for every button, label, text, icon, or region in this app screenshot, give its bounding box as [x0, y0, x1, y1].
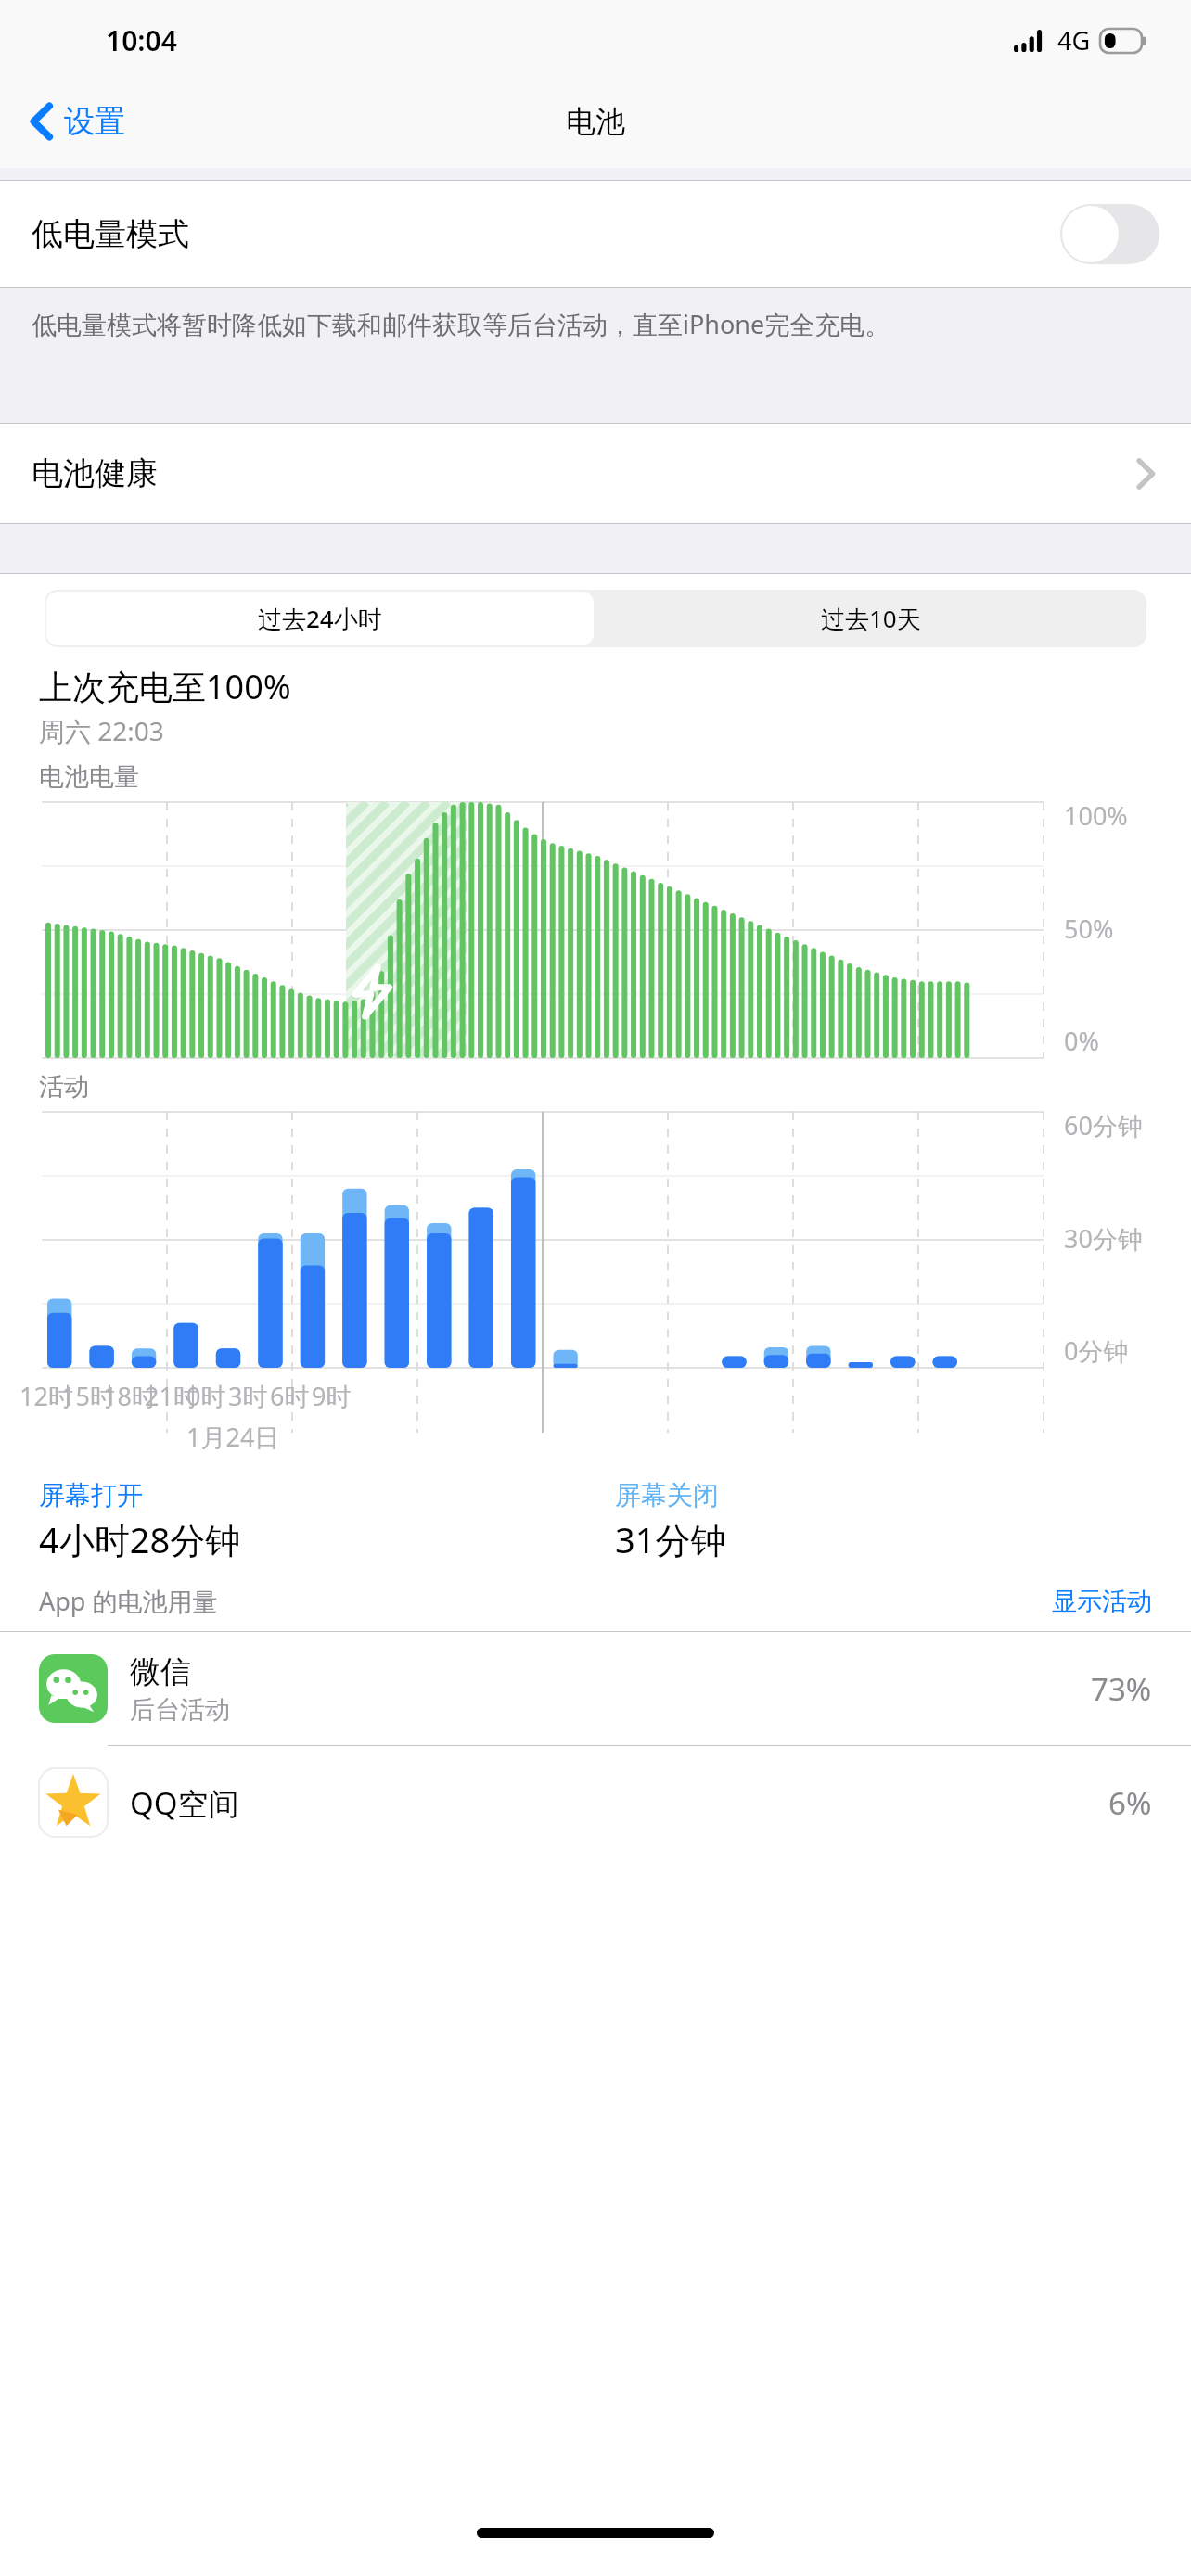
- staticText: 50%: [1064, 912, 1114, 946]
- staticText: 6时: [270, 1379, 310, 1413]
- staticText: 低电量模式: [32, 214, 189, 254]
- button[interactable]: 低电量模式: [0, 181, 1191, 287]
- staticText: 电池: [566, 103, 625, 140]
- staticText: 4G: [1057, 23, 1091, 57]
- staticText: 21时: [145, 1379, 198, 1413]
- button[interactable]: 过去10天: [595, 590, 1146, 647]
- staticText: 0分钟: [1064, 1333, 1129, 1368]
- staticText: 30分钟: [1064, 1221, 1143, 1256]
- staticText: 15时: [61, 1379, 115, 1413]
- staticText: 电池电量: [39, 761, 139, 793]
- staticText: 屏幕关闭: [615, 1479, 719, 1511]
- staticText: 周六 22:03: [39, 713, 164, 748]
- staticText: 9时: [312, 1379, 352, 1413]
- staticText: 3时: [228, 1379, 268, 1413]
- staticText: 微信: [130, 1652, 191, 1691]
- staticText: 6%: [1108, 1782, 1152, 1824]
- staticText: App 的电池用量: [39, 1584, 218, 1618]
- button[interactable]: QQ空间: [0, 1746, 1191, 1859]
- staticText: 设置: [64, 102, 125, 141]
- staticText: 上次充电至100%: [39, 664, 291, 709]
- staticText: 屏幕打开: [39, 1479, 143, 1511]
- staticText: QQ空间: [130, 1782, 239, 1824]
- button[interactable]: 电池健康: [0, 424, 1191, 523]
- staticText: 12时: [19, 1379, 73, 1413]
- staticText: 60分钟: [1064, 1108, 1143, 1142]
- staticText: 后台活动: [130, 1694, 230, 1726]
- staticText: 过去10天: [821, 602, 921, 635]
- button[interactable]: 设置: [0, 93, 144, 150]
- staticText: 1月24日: [186, 1420, 280, 1454]
- staticText: 低电量模式将暂时降低如下载和邮件获取等后台活动，直至iPhone完全充电。: [32, 307, 890, 341]
- staticText: 10:04: [106, 21, 177, 59]
- staticText: 过去24小时: [258, 602, 382, 635]
- staticText: 31分钟: [615, 1515, 726, 1563]
- staticText: 18时: [103, 1379, 157, 1413]
- button[interactable]: 过去24小时: [46, 592, 594, 645]
- staticText: 活动: [39, 1071, 89, 1103]
- staticText: 4小时28分钟: [39, 1515, 241, 1563]
- button[interactable]: 显示活动: [1052, 1586, 1152, 1617]
- staticText: 73%: [1091, 1668, 1152, 1710]
- staticText: 0时: [186, 1379, 226, 1413]
- button[interactable]: 低电量模式开关: [1060, 204, 1159, 264]
- staticText: 100%: [1064, 798, 1128, 833]
- staticText: 电池健康: [32, 453, 158, 493]
- button[interactable]: 微信: [0, 1632, 1191, 1745]
- staticText: 显示活动: [1052, 1586, 1152, 1617]
- staticText: 0%: [1064, 1024, 1099, 1058]
